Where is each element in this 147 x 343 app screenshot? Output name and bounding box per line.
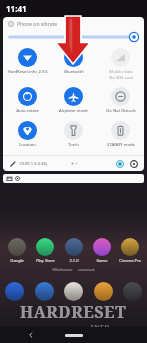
staticText: HRvideonor camera.st [0, 267, 147, 272]
button[interactable]: Screenshot [115, 159, 125, 169]
button[interactable]: App [94, 282, 113, 301]
button[interactable]: Game [89, 238, 115, 263]
button[interactable]: STANBY mode [98, 120, 143, 149]
button[interactable]: 2.1.0 [61, 238, 87, 263]
staticText: Cinema Pro [119, 258, 141, 263]
staticText: Airplane mode [59, 108, 88, 114]
button[interactable]: Bluetooth [51, 47, 96, 76]
button[interactable]: Do Not Disturb [98, 86, 143, 115]
staticText: 10.00.1 6.5.45j [19, 161, 48, 167]
staticText: HARDRESET [20, 301, 127, 323]
staticText: .INFO [88, 323, 111, 327]
button[interactable]: Location [5, 120, 50, 149]
staticText: Mobile data No SIM card [109, 69, 133, 80]
staticText: Torch [68, 142, 79, 148]
button[interactable]: Auto-rotate [5, 86, 50, 115]
staticText: Game [96, 258, 108, 263]
button[interactable]: Mobile data No SIM card [98, 47, 143, 81]
staticText: Bluetooth [64, 69, 84, 75]
button[interactable]: Edit [8, 159, 17, 168]
button[interactable]: App [64, 282, 83, 301]
staticText: STANBY mode [107, 142, 135, 148]
button[interactable]: HardReset.info_2.5G [5, 47, 50, 76]
staticText: Phone on vibrate [17, 21, 58, 28]
button[interactable]: Google [4, 238, 30, 263]
staticText: Play Store [36, 258, 55, 263]
button[interactable]: App [5, 282, 24, 301]
button[interactable]: Cinema Pro [117, 238, 143, 263]
button[interactable]: Airplane mode [51, 86, 96, 115]
staticText: Location [19, 142, 36, 148]
staticText: Auto-rotate [16, 108, 39, 114]
staticText: 11:41 [6, 3, 27, 14]
staticText: HardReset.info_2.5G [7, 69, 48, 75]
button[interactable]: Home [61, 330, 87, 340]
button[interactable]: Play Store [32, 238, 58, 263]
button[interactable]: App [35, 282, 54, 301]
button[interactable]: Back [25, 329, 37, 341]
staticText: Do Not Disturb [106, 108, 136, 114]
button[interactable]: App [123, 282, 142, 301]
staticText: 2.1.0 [69, 258, 79, 263]
staticText: Google [10, 258, 24, 263]
button[interactable]: Settings [129, 159, 139, 169]
button[interactable]: Torch [51, 120, 96, 149]
button[interactable]: Brightness [8, 31, 139, 43]
